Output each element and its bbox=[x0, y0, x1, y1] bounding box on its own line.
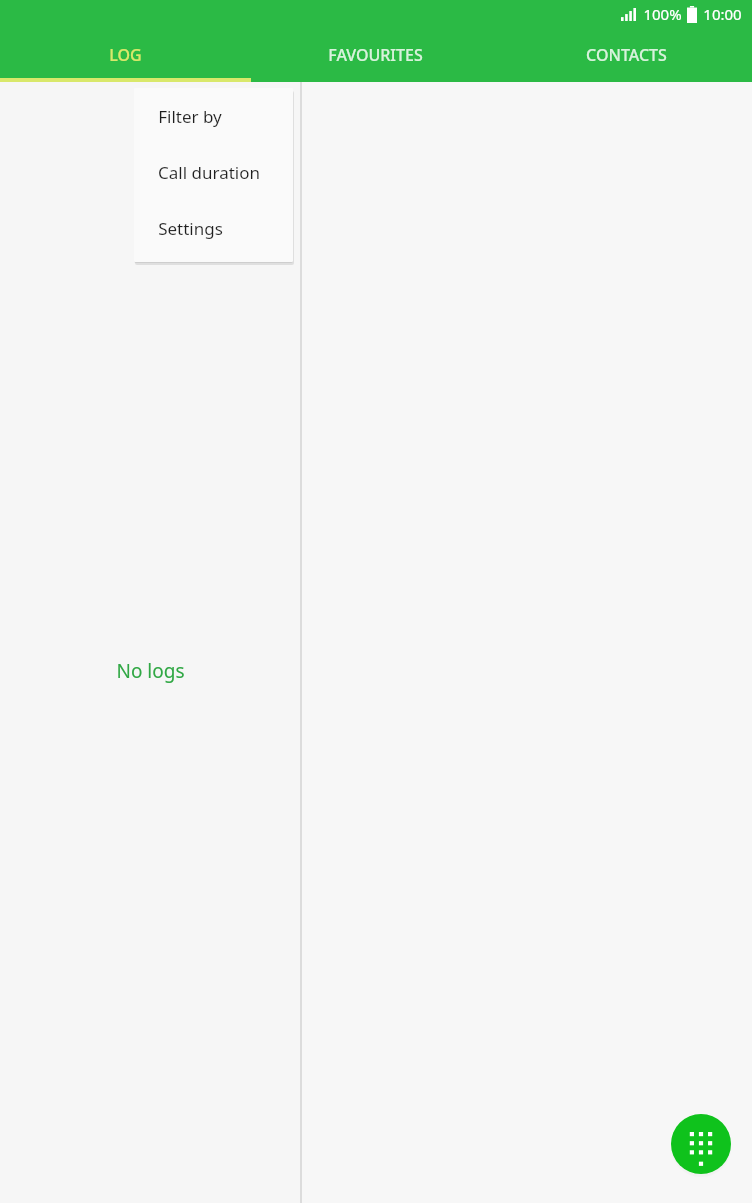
staticText: 100% bbox=[643, 4, 682, 24]
staticText: Settings bbox=[158, 217, 223, 240]
button[interactable]: Filter by bbox=[134, 88, 293, 144]
button[interactable]: Dialpad bbox=[671, 1114, 731, 1174]
button[interactable]: FAVOURITES bbox=[250, 28, 501, 82]
button[interactable]: LOG bbox=[0, 28, 250, 82]
staticText: FAVOURITES bbox=[328, 44, 423, 66]
staticText: 10:00 bbox=[703, 4, 742, 24]
staticText: LOG bbox=[109, 44, 142, 66]
staticText: Call duration bbox=[158, 161, 260, 184]
button[interactable]: Settings bbox=[134, 200, 293, 256]
button[interactable]: CONTACTS bbox=[501, 28, 752, 82]
button[interactable]: Call duration bbox=[134, 144, 293, 200]
staticText: Filter by bbox=[158, 105, 222, 128]
staticText: CONTACTS bbox=[586, 44, 667, 66]
staticText: No logs bbox=[116, 658, 185, 684]
